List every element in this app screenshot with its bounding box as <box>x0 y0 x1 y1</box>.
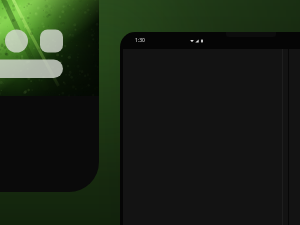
button[interactable] <box>0 0 99 192</box>
other: Battery <box>200 39 204 43</box>
button[interactable]: 1:30 <box>120 32 300 225</box>
other: Mobile signal <box>195 39 199 43</box>
staticText: 1:30 <box>135 37 145 44</box>
other: Wi-Fi <box>190 39 194 43</box>
